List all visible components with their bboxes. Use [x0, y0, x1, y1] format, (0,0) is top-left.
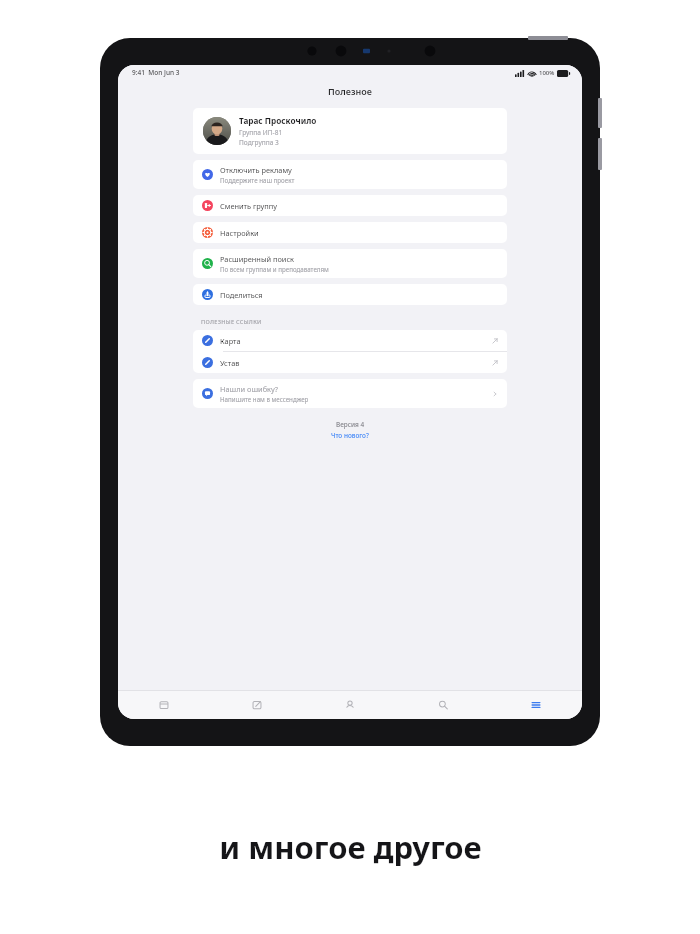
button[interactable]: Menu [489, 691, 582, 719]
button[interactable]: Schedule [118, 691, 210, 719]
button[interactable]: Search [396, 691, 489, 719]
staticText: Поддержите наш проект [220, 176, 295, 184]
button[interactable]: Нашли ошибку? [193, 379, 507, 408]
staticText: Сменить группу [220, 201, 277, 211]
staticText: По всем группам и преподавателям [220, 265, 329, 273]
button[interactable]: Отключить рекламу [193, 160, 507, 189]
staticText: Нашли ошибку? [220, 384, 278, 394]
staticText: Расширенный поиск [220, 254, 295, 264]
staticText: Тарас Проскочило [239, 115, 317, 126]
staticText: Что нового? [331, 431, 369, 440]
button[interactable]: Что нового? [331, 431, 369, 440]
button[interactable]: Настройки [193, 222, 507, 243]
button[interactable]: Profile [303, 691, 396, 719]
staticText: ПОЛЕЗНЫЕ ССЫЛКИ [201, 318, 262, 326]
staticText: Отключить рекламу [220, 165, 292, 175]
staticText: Настройки [220, 228, 259, 238]
button[interactable]: Расширенный поиск [193, 249, 507, 278]
staticText: и многое другое [219, 826, 482, 868]
staticText: 9:41 Mon Jun 3 [132, 68, 180, 77]
staticText: Полезное [328, 85, 372, 97]
button[interactable]: Устав [193, 352, 507, 373]
staticText: Поделиться [220, 290, 263, 300]
staticText: Подгруппа 3 [239, 138, 279, 147]
staticText: Карта [220, 336, 241, 346]
staticText: Группа ИП-81 [239, 128, 283, 137]
staticText: Устав [220, 358, 240, 368]
button[interactable]: Поделиться [193, 284, 507, 305]
button[interactable]: Сменить группу [193, 195, 507, 216]
staticText: Версия 4 [336, 420, 365, 429]
staticText: 100% [539, 69, 555, 77]
button[interactable]: Compose [210, 691, 303, 719]
button[interactable]: Тарас Проскочило [193, 108, 507, 154]
button[interactable]: Карта [193, 330, 507, 351]
staticText: Напишите нам в мессенджер [220, 395, 309, 403]
